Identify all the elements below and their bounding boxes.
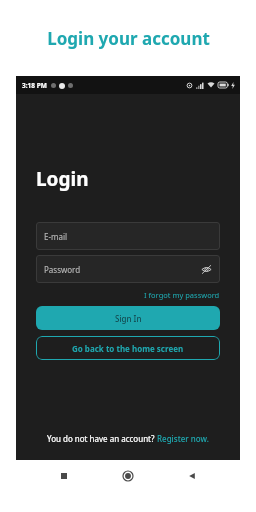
- button[interactable]: E-mail: [36, 222, 220, 250]
- staticText: Password: [44, 264, 81, 275]
- button[interactable]: Recent apps: [32, 466, 96, 486]
- staticText: Go back to the home screen: [72, 343, 184, 354]
- button[interactable]: Password: [36, 255, 220, 283]
- staticText: Sign In: [115, 313, 142, 324]
- button[interactable]: Register now.: [157, 433, 209, 444]
- staticText: You do not have an account?: [47, 433, 157, 444]
- button[interactable]: Go back to the home screen: [36, 336, 220, 360]
- button[interactable]: Show password: [199, 262, 213, 276]
- button[interactable]: I forgot my password: [144, 288, 220, 302]
- button[interactable]: Sign In: [36, 306, 220, 330]
- staticText: Login: [36, 166, 89, 192]
- button[interactable]: Home: [96, 466, 160, 486]
- staticText: E-mail: [44, 231, 68, 242]
- staticText: 3:18 PM: [22, 81, 47, 90]
- button[interactable]: Back: [160, 466, 224, 486]
- staticText: Login your account: [47, 27, 210, 50]
